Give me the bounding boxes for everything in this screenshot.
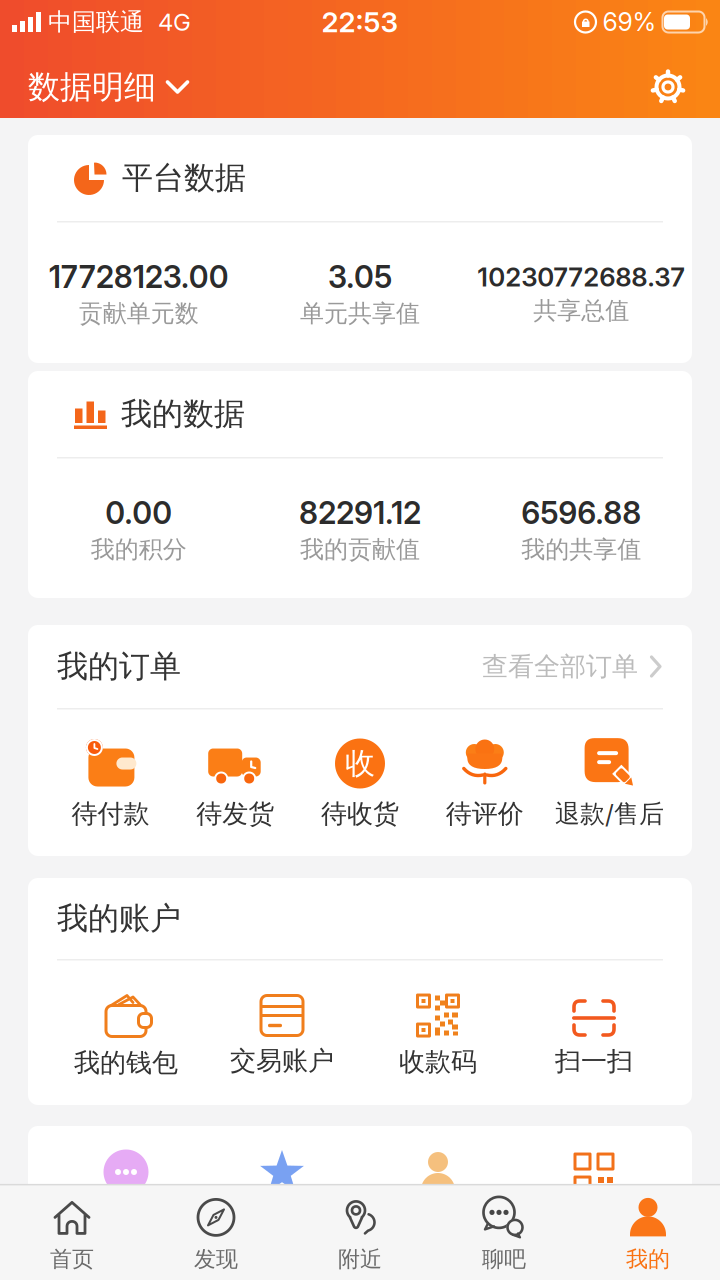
staticText: 平台数据: [122, 158, 246, 198]
staticText: 0.00: [105, 494, 172, 531]
button[interactable]: 数据明细: [28, 67, 189, 107]
button[interactable]: 收藏: [204, 1148, 360, 1235]
staticText: 收: [345, 745, 375, 782]
staticText: 待发货: [196, 797, 274, 830]
button[interactable]: 退款/售后: [547, 738, 672, 830]
button[interactable]: 聊吧: [432, 1195, 576, 1273]
staticText: 退款/售后: [555, 798, 664, 830]
staticText: 聊吧: [482, 1245, 526, 1273]
staticText: 我的钱包: [74, 1046, 178, 1079]
staticText: 收款码: [399, 1045, 477, 1078]
staticText: 扫一扫: [555, 1045, 633, 1078]
button[interactable]: 待付款: [48, 737, 173, 830]
button[interactable]: 扫一扫: [516, 994, 672, 1078]
staticText: 查看全部订单: [482, 650, 638, 683]
staticText: 待评价: [446, 797, 524, 830]
staticText: 82291.12: [299, 494, 421, 531]
staticText: 3.05: [328, 258, 392, 295]
staticText: 我的积分: [91, 534, 187, 565]
staticText: 我的共享值: [521, 534, 641, 565]
button[interactable]: 交易账户: [204, 994, 360, 1077]
button[interactable]: 首页: [0, 1195, 144, 1273]
button[interactable]: 收款码: [360, 993, 516, 1078]
staticText: 贡献单元数: [79, 298, 199, 329]
button[interactable]: 待评价: [422, 737, 547, 830]
staticText: 交易账户: [230, 1044, 334, 1077]
staticText: 单元共享值: [300, 298, 420, 329]
staticText: 数据明细: [28, 67, 156, 107]
staticText: 中国联通: [48, 7, 144, 37]
staticText: 4G: [158, 7, 191, 36]
staticText: 待付款: [71, 797, 149, 830]
staticText: 我的订单: [57, 647, 181, 686]
staticText: 附近: [338, 1245, 382, 1273]
staticText: 6596.88: [521, 494, 641, 531]
button[interactable]: 我的钱包: [48, 992, 204, 1079]
staticText: 共享总值: [533, 296, 629, 326]
button[interactable]: 发现: [144, 1195, 288, 1273]
staticText: 10230772688.37: [477, 261, 685, 293]
button[interactable]: 应用: [516, 1148, 672, 1235]
staticText: 我的: [626, 1245, 670, 1273]
button[interactable]: 待收货: [298, 737, 422, 830]
staticText: 我的贡献值: [300, 534, 420, 565]
staticText: 发现: [194, 1245, 238, 1273]
staticText: 22:53: [321, 5, 398, 39]
button[interactable]: 查看全部订单: [482, 650, 662, 683]
staticText: 首页: [50, 1245, 94, 1273]
button[interactable]: 我的: [576, 1195, 720, 1273]
button[interactable]: 消息: [48, 1148, 204, 1235]
button[interactable]: 联系人: [360, 1148, 516, 1235]
button[interactable]: 设置: [646, 65, 690, 109]
staticText: 我的账户: [57, 899, 181, 938]
staticText: 待收货: [321, 797, 399, 830]
button[interactable]: 附近: [288, 1195, 432, 1273]
button[interactable]: 待发货: [173, 737, 298, 830]
staticText: 17728123.00: [49, 258, 229, 295]
staticText: 69%: [602, 7, 656, 37]
staticText: 我的数据: [121, 394, 245, 434]
